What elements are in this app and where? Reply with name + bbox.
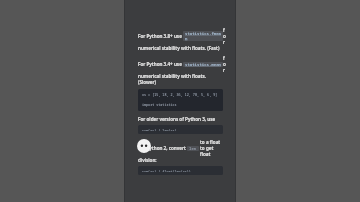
staticText: For Python 3.4+ use xyxy=(138,61,182,67)
staticText: numerical stability with floats. (Fast) xyxy=(138,45,220,51)
staticText: statistics.mean xyxy=(185,62,221,67)
button[interactable]: sum(xs) / len(xs) xyxy=(138,125,223,134)
staticText: For Python 2, convert xyxy=(138,145,186,151)
staticText: import statistics xyxy=(142,102,177,107)
staticText: For older versions of Python 3, use xyxy=(138,116,216,122)
button[interactable]: Reaction xyxy=(137,139,151,153)
staticText: sum(xs) / float(len(xs)) xyxy=(142,169,191,172)
staticText: numerical stability with floats. (Slower… xyxy=(138,73,223,85)
staticText: division: xyxy=(138,157,157,163)
button[interactable]: xs = [15, 18, 2, 36, 12, 78, 5, 6, 9] xyxy=(138,89,223,111)
staticText: xs = [15, 18, 2, 36, 12, 78, 5, 6, 9] xyxy=(142,92,218,97)
staticText: len xyxy=(189,146,197,151)
staticText: sum(xs) / len(xs) xyxy=(142,128,177,131)
staticText: to a float to get float xyxy=(200,139,223,157)
button[interactable]: sum(xs) / float(len(xs)) xyxy=(138,166,223,175)
staticText: statistics.fmean xyxy=(185,31,221,41)
staticText: For Python 3.8+ use xyxy=(138,33,182,39)
